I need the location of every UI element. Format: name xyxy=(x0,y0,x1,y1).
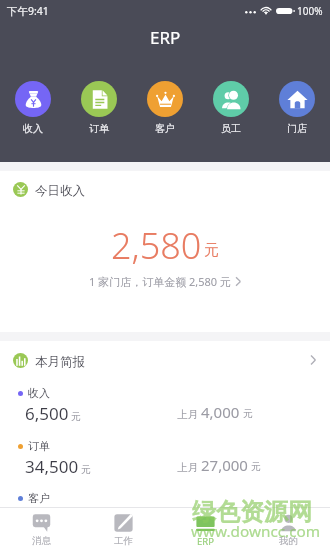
staticText: 上月 xyxy=(177,408,198,421)
staticText: 1 家门店，订单金额 2,580 元 xyxy=(89,274,231,289)
staticText: 门店 xyxy=(287,122,307,135)
staticText: 6,500 xyxy=(25,402,69,425)
staticText: 2,580 xyxy=(111,221,202,270)
staticText: ERP xyxy=(150,26,181,49)
staticText: 今日收入 xyxy=(35,183,85,199)
button[interactable]: 门店 xyxy=(264,81,330,137)
staticText: ERP xyxy=(197,535,214,548)
staticText: 客户 xyxy=(155,122,175,135)
staticText: 消息 xyxy=(32,535,51,547)
staticText: 27,000 xyxy=(201,455,248,475)
staticText: 900 xyxy=(201,507,227,527)
button[interactable]: 客户 xyxy=(0,488,330,538)
staticText: 收入 xyxy=(28,386,50,400)
staticText: 客户 xyxy=(28,491,50,505)
staticText: 34,500 xyxy=(25,455,79,478)
staticText: 员工 xyxy=(221,122,241,135)
staticText: 工作 xyxy=(114,535,133,547)
button[interactable]: 2,580 xyxy=(0,171,330,332)
staticText: 元 xyxy=(81,463,91,476)
staticText: 元 xyxy=(204,241,219,260)
button[interactable]: 收入 xyxy=(0,81,66,137)
staticText: 4,000 xyxy=(201,402,240,422)
staticText: 下午9:41 xyxy=(7,4,49,18)
staticText: 1,200 xyxy=(25,507,69,530)
staticText: 我的 xyxy=(279,535,298,547)
button[interactable]: 消息 xyxy=(0,508,82,550)
button[interactable]: 客户 xyxy=(132,81,198,137)
staticText: 元 xyxy=(230,512,240,525)
button[interactable]: 员工 xyxy=(198,81,264,137)
button[interactable]: ERP xyxy=(164,508,247,550)
staticText: 绿色资源网 xyxy=(192,497,312,527)
staticText: www.downcc.com xyxy=(191,521,321,542)
button[interactable]: 收入 xyxy=(0,383,330,433)
staticText: 元 xyxy=(71,410,81,423)
staticText: 100% xyxy=(297,4,323,18)
staticText: 元 xyxy=(243,407,253,420)
button[interactable]: 本月简报 xyxy=(13,353,317,371)
button[interactable]: 工作 xyxy=(82,508,164,550)
button[interactable]: 订单 xyxy=(0,436,330,486)
button[interactable]: 订单 xyxy=(66,81,132,137)
staticText: 收入 xyxy=(23,122,43,135)
staticText: 订单 xyxy=(89,122,109,135)
staticText: 元 xyxy=(251,460,261,473)
button[interactable]: 我的 xyxy=(247,508,330,550)
staticText: 上月 xyxy=(177,461,198,474)
staticText: 本月简报 xyxy=(35,354,85,370)
staticText: 上月 xyxy=(177,513,198,526)
staticText: 订单 xyxy=(28,439,50,453)
